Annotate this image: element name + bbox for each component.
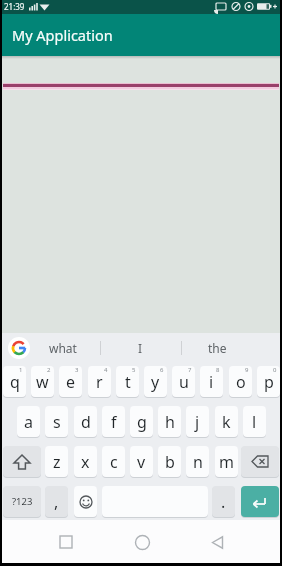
button[interactable]: ?123 [3,486,41,517]
button[interactable]: j [186,406,209,437]
button[interactable]: y [144,366,167,397]
button[interactable]: d [74,406,97,437]
button[interactable]: r [88,366,111,397]
button[interactable] [3,446,41,477]
button[interactable] [130,530,154,554]
button[interactable]: k [215,406,238,437]
button[interactable] [241,446,279,477]
staticText: l [252,411,257,433]
button[interactable]: I [100,333,181,363]
staticText: 0 [273,366,277,374]
button[interactable] [8,337,30,359]
button[interactable]: t [116,366,139,397]
staticText: 4 [104,366,108,374]
button[interactable]: f [102,406,125,437]
staticText: , [54,491,59,513]
button[interactable]: p [257,366,280,397]
staticText: 5 [132,366,136,374]
staticText: 2 [47,366,51,374]
staticText: I [138,340,143,356]
button[interactable] [74,486,97,517]
staticText: z [53,451,61,473]
staticText: r [96,371,103,393]
button[interactable]: q [3,366,26,397]
button[interactable]: x [74,446,97,477]
staticText: q [10,371,20,393]
staticText: x [81,451,90,473]
button[interactable]: z [45,446,68,477]
staticText: 1 [19,366,23,374]
staticText: 3 [75,366,79,374]
button[interactable] [241,486,279,517]
staticText: f [111,411,117,433]
staticText: 7 [188,366,192,374]
staticText: g [137,411,147,433]
staticText: 6 [160,366,164,374]
staticText: . [221,491,226,513]
button[interactable]: b [158,446,181,477]
button[interactable]: n [186,446,209,477]
button[interactable]: v [130,446,153,477]
staticText: c [110,451,118,473]
staticText: i [209,371,214,393]
button[interactable]: l [243,406,266,437]
button[interactable]: s [45,406,68,437]
button[interactable]: h [158,406,181,437]
staticText: k [222,411,231,433]
staticText: the [208,340,227,356]
button[interactable]: m [215,446,238,477]
staticText: ?123 [12,495,33,508]
staticText: 8 [216,366,220,374]
staticText: 9 [245,366,249,374]
staticText: p [264,371,274,393]
staticText: what [49,340,77,356]
staticText: m [219,451,234,473]
staticText: My Application [12,25,113,45]
staticText: o [236,371,246,393]
button[interactable] [205,530,229,554]
staticText: t [125,371,131,393]
button[interactable]: u [172,366,195,397]
button[interactable]: a [17,406,40,437]
staticText: v [137,451,146,473]
staticText: 21:39 [4,1,25,12]
staticText: w [36,371,49,393]
staticText: j [195,411,200,433]
button[interactable]: e [59,366,82,397]
button[interactable]: , [45,486,68,517]
button[interactable]: w [31,366,54,397]
button[interactable]: what [30,333,96,363]
staticText: h [165,411,175,433]
staticText: d [81,411,91,433]
staticText: s [53,411,61,433]
button[interactable] [54,530,78,554]
button[interactable]: g [130,406,153,437]
button[interactable]: the [181,333,253,363]
button[interactable]: . [212,486,235,517]
button[interactable]: i [200,366,223,397]
button[interactable]: o [229,366,252,397]
staticText: a [24,411,33,433]
staticText: n [193,451,203,473]
staticText: u [179,371,189,393]
button[interactable]: c [102,446,125,477]
staticText: b [165,451,175,473]
staticText: y [151,371,160,393]
staticText: e [66,371,76,393]
